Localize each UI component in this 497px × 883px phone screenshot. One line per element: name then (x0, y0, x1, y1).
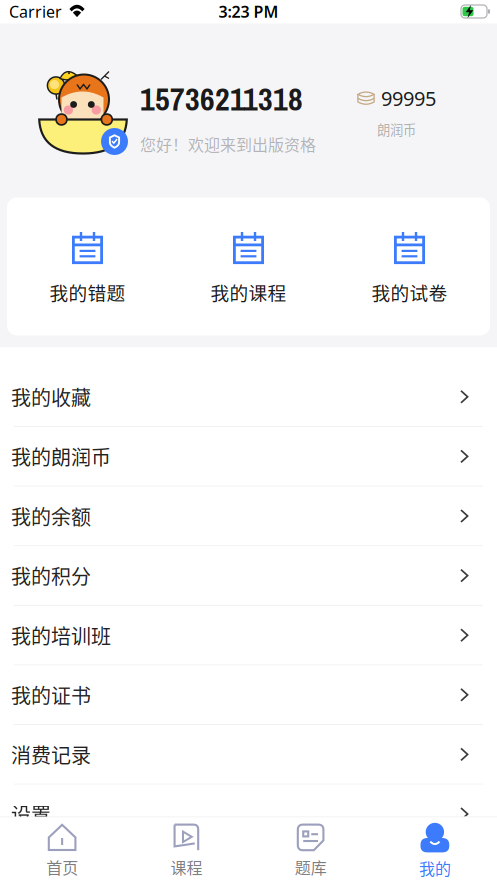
staticText: 99995 (381, 85, 436, 112)
staticText: 我的余额 (11, 501, 91, 530)
staticText: 我的试卷 (371, 278, 447, 305)
button[interactable]: 我的错题 (7, 197, 168, 335)
button[interactable]: 我的朗润币 (0, 427, 497, 487)
staticText: 我的证书 (11, 680, 91, 709)
staticText: 消费记录 (11, 740, 91, 769)
staticText: Carrier (9, 1, 62, 22)
button[interactable]: 课程 (124, 817, 248, 883)
button[interactable]: 设置 (0, 785, 497, 844)
staticText: 3:23 PM (218, 1, 278, 22)
staticText: 我的朗润币 (11, 442, 111, 471)
staticText: 我的课程 (210, 278, 286, 305)
button[interactable]: 我的 (373, 817, 497, 883)
button[interactable]: 我的证书 (0, 665, 497, 725)
button[interactable]: 我的课程 (168, 197, 329, 335)
staticText: 我的积分 (11, 561, 91, 590)
staticText: 我的收藏 (11, 382, 91, 411)
staticText: 我的培训班 (11, 621, 111, 650)
button[interactable]: 我的余额 (0, 487, 497, 546)
button[interactable]: 题库 (248, 817, 373, 883)
staticText: 课程 (170, 855, 202, 879)
staticText: 15736211318 (140, 77, 303, 120)
button[interactable]: 消费记录 (0, 725, 497, 785)
button[interactable]: 首页 (0, 817, 124, 883)
staticText: 首页 (46, 855, 78, 879)
staticText: 朗润币 (377, 120, 416, 139)
button[interactable]: 我的积分 (0, 546, 497, 606)
button[interactable]: 我的试卷 (329, 197, 490, 335)
button[interactable]: 我的培训班 (0, 606, 497, 665)
staticText: 您好！欢迎来到出版资格 (140, 132, 316, 156)
staticText: 设置 (11, 799, 51, 828)
button[interactable]: 我的收藏 (0, 367, 497, 427)
staticText: 我的错题 (49, 278, 125, 305)
staticText: 我的 (419, 856, 451, 880)
staticText: 题库 (295, 855, 327, 879)
